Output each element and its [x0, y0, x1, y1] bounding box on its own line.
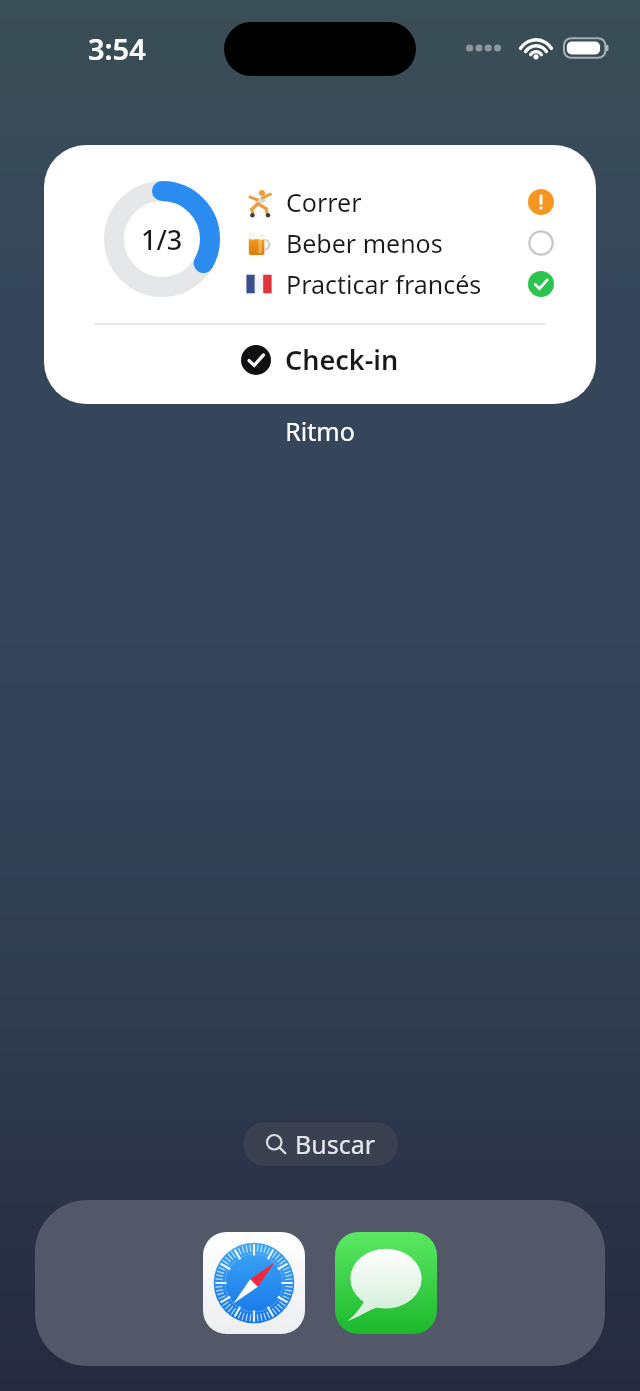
button[interactable]: Correr — [244, 181, 554, 222]
button[interactable]: Check-in — [229, 333, 411, 386]
staticText: Buscar — [295, 1127, 376, 1161]
button[interactable]: Practicar francés — [244, 263, 554, 304]
staticText: Check-in — [285, 341, 399, 378]
staticText: Ritmo — [44, 414, 596, 448]
staticText: 3:54 — [88, 29, 146, 68]
button[interactable]: Safari — [203, 1232, 305, 1334]
staticText: Correr — [286, 185, 528, 219]
staticText: 1/3 — [141, 221, 183, 258]
staticText: Beber menos — [286, 226, 528, 260]
button[interactable]: Messages — [335, 1232, 437, 1334]
staticText: Practicar francés — [286, 267, 528, 301]
button[interactable]: Beber menos — [244, 222, 554, 263]
button[interactable]: Buscar — [243, 1122, 398, 1166]
button[interactable]: 1/3 — [44, 145, 596, 404]
